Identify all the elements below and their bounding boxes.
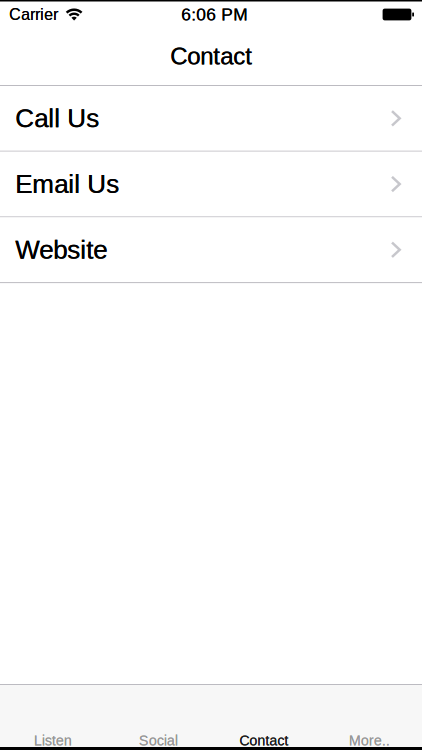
staticText: Contact	[240, 733, 289, 748]
button[interactable]: Listen	[0, 685, 105, 747]
staticText: Contact	[170, 43, 252, 70]
staticText: 6:06 PM	[181, 5, 247, 24]
button[interactable]: Call Us	[0, 86, 422, 151]
staticText: Social	[139, 733, 178, 748]
button[interactable]: Contact	[211, 685, 316, 747]
staticText: Carrier	[9, 6, 58, 23]
staticText: Listen	[34, 733, 72, 748]
staticText: Call Us	[15, 104, 99, 133]
staticText: Website	[15, 235, 107, 264]
staticText: Website	[15, 235, 107, 264]
staticText: Email Us	[15, 169, 119, 198]
staticText: More..	[349, 733, 390, 748]
staticText: Call Us	[15, 104, 99, 133]
staticText: Contact	[239, 733, 288, 748]
staticText: Email Us	[15, 169, 119, 198]
staticText: Contact	[170, 43, 252, 70]
staticText: Social	[139, 733, 178, 748]
staticText: Carrier	[9, 6, 58, 23]
button[interactable]: Social	[105, 685, 211, 747]
button[interactable]: More..	[316, 685, 422, 747]
staticText: 6:06 PM	[182, 5, 248, 24]
staticText: More..	[349, 733, 390, 748]
button[interactable]: Website	[0, 217, 422, 282]
button[interactable]: Email Us	[0, 152, 422, 216]
staticText: Listen	[34, 733, 72, 748]
